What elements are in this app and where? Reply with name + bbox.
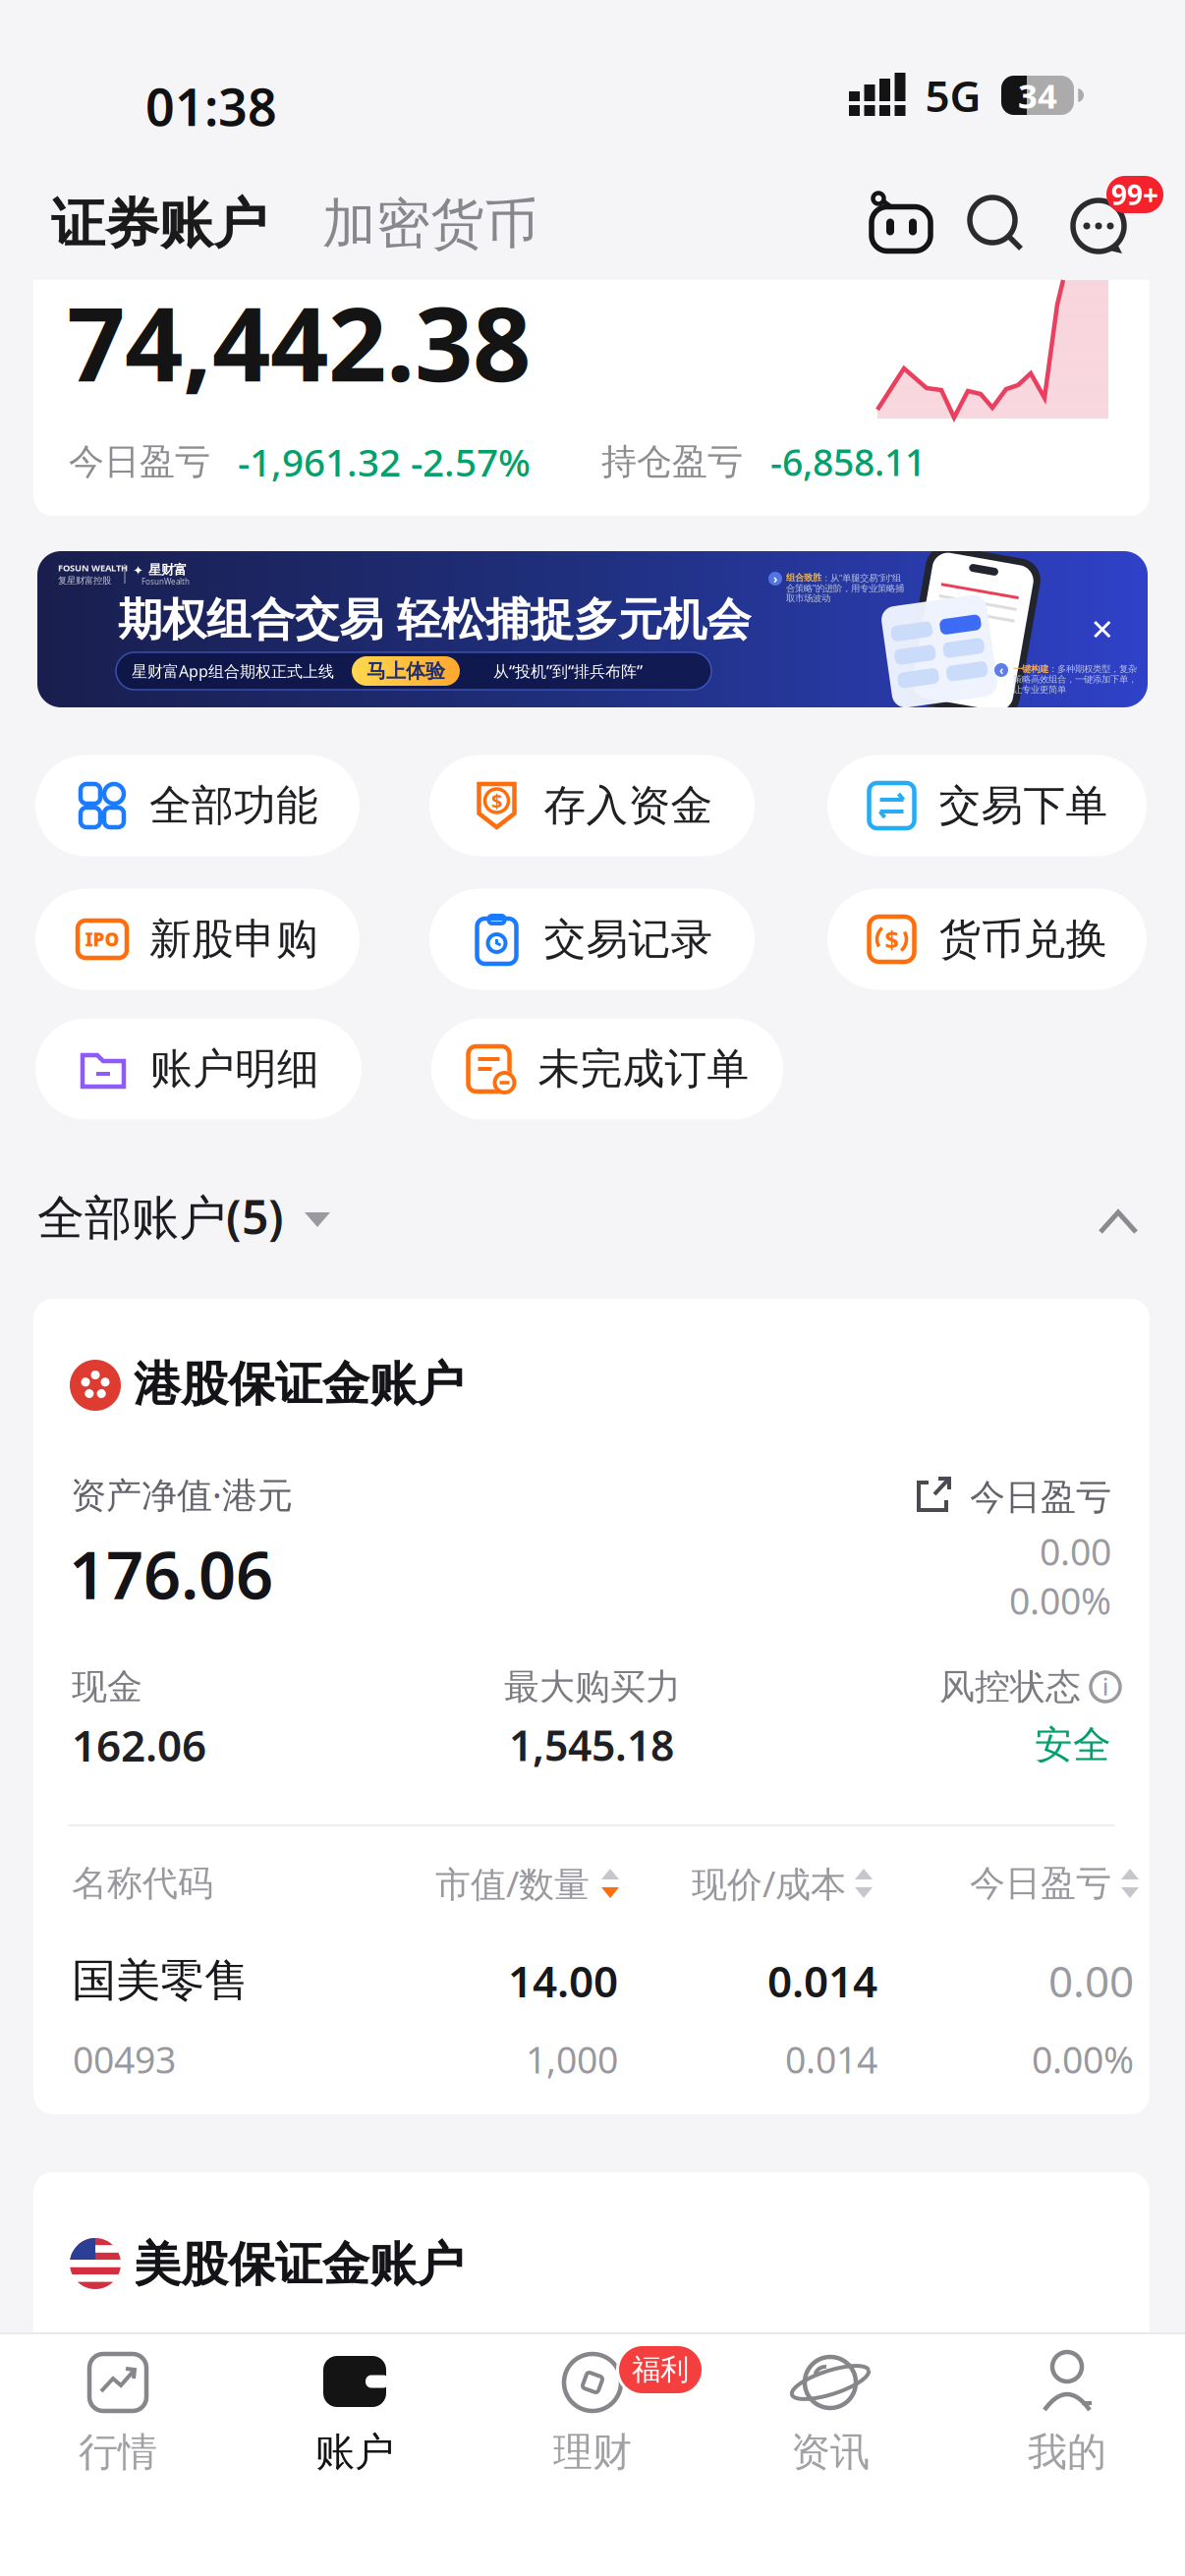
staticText: 1,000	[526, 2035, 618, 2084]
button[interactable]: AI assistant	[870, 194, 932, 252]
staticText: 加密货币	[322, 191, 538, 257]
staticText: 合策略”的进阶，用专业策略捕	[786, 582, 904, 594]
staticText: 复星财富控股	[58, 575, 111, 586]
staticText: 最大购买力	[504, 1665, 681, 1709]
staticText: 美股保证金账户	[134, 2236, 464, 2294]
staticText: ✕	[1090, 613, 1115, 646]
staticText: 176.06	[69, 1530, 273, 1617]
staticText: 资讯	[791, 2428, 870, 2476]
staticText: 组合致胜	[786, 572, 821, 583]
button[interactable]: 证券账户	[0, 0, 1185, 2576]
button[interactable]: IPO	[35, 889, 360, 990]
button[interactable]: 未完成订单	[431, 1018, 783, 1120]
button[interactable]: 交易下单	[827, 755, 1147, 856]
button[interactable]: Me	[1008, 2333, 1126, 2481]
button[interactable]: Messages	[1070, 195, 1129, 255]
staticText: 从“投机”到“排兵布阵”	[493, 661, 643, 681]
staticText: 行情	[79, 2428, 157, 2476]
staticText: 5G	[925, 67, 981, 124]
button[interactable]: FOSUN WEALTH	[37, 551, 1148, 707]
staticText: i	[1102, 1672, 1108, 1702]
staticText: 00493	[73, 2035, 176, 2084]
button[interactable]: Share	[915, 1475, 954, 1514]
button[interactable]: 加密货币	[0, 0, 1185, 2576]
staticText: 国美零售	[72, 1953, 249, 2008]
staticText: 存入资金	[544, 780, 713, 831]
staticText: 99+	[1111, 176, 1158, 213]
staticText: 现价/成本	[692, 1860, 846, 1907]
staticText: 0.014	[785, 2035, 877, 2084]
staticText: IPO	[85, 927, 119, 951]
button[interactable]: 交易记录	[429, 889, 755, 990]
staticText: 港股保证金账户	[134, 1355, 464, 1413]
staticText: ✦ 星财富	[133, 562, 187, 578]
staticText: FOSUN WEALTH	[58, 562, 128, 574]
button[interactable]: 马上体验	[352, 656, 460, 686]
staticText: 一键构建	[1013, 663, 1048, 675]
staticText: 货币兑换	[939, 913, 1108, 965]
staticText: 全部功能	[149, 780, 318, 831]
staticText: 资产净值·港元	[71, 1471, 293, 1518]
staticText: 0.014	[767, 1952, 877, 2009]
staticText: 证券账户	[51, 191, 267, 257]
staticText: 策略高效组合，一键添加下单，	[1013, 674, 1137, 685]
staticText: 让专业更简单	[1013, 684, 1066, 695]
staticText: ：从“单腿交易”到“组	[821, 572, 901, 584]
staticText: 14.00	[508, 1952, 618, 2009]
staticText: 名称代码	[72, 1862, 213, 1905]
staticText: 今日盈亏	[970, 1476, 1111, 1519]
staticText: 马上体验	[367, 659, 445, 683]
staticText: ：多种期权类型，复杂	[1048, 663, 1137, 675]
staticText: 新股申购	[149, 913, 318, 965]
button[interactable]: 账户明细	[35, 1018, 362, 1120]
staticText: 安全	[1035, 1722, 1111, 1768]
button[interactable]: Search	[967, 195, 1026, 253]
staticText: 0.00	[1040, 1527, 1111, 1576]
button[interactable]: Close banner	[1086, 613, 1119, 646]
staticText: 0.00%	[1032, 2035, 1134, 2084]
staticText: 1,545.18	[509, 1717, 674, 1773]
staticText: 162.06	[72, 1716, 206, 1774]
staticText: 我的	[1028, 2428, 1106, 2476]
staticText: 期权组合交易 轻松捕捉多元机会	[118, 593, 751, 647]
staticText: -1,961.32 -2.57%	[238, 437, 531, 487]
staticText: 理财	[553, 2428, 632, 2476]
staticText: 账户	[315, 2428, 394, 2476]
button[interactable]: Collapse accounts	[1097, 1206, 1140, 1240]
staticText: 全部账户(5)	[37, 1185, 284, 1248]
staticText: 风控状态	[939, 1665, 1081, 1709]
button[interactable]: Markets	[59, 2333, 177, 2481]
button[interactable]: 全部账户(5)	[37, 1191, 342, 1250]
staticText: 取市场波动	[786, 593, 830, 604]
staticText: 持仓盈亏	[601, 440, 743, 483]
staticText: 未完成订单	[538, 1043, 749, 1095]
button[interactable]: 全部功能	[35, 755, 360, 856]
staticText: 交易记录	[544, 913, 713, 965]
button[interactable]: $	[827, 889, 1147, 990]
staticText: ‹	[999, 662, 1003, 678]
staticText: 74,442.38	[67, 274, 531, 410]
button[interactable]: Wealth	[534, 2333, 651, 2481]
staticText: 市值/数量	[435, 1860, 590, 1907]
staticText: 星财富App组合期权正式上线	[132, 661, 334, 681]
staticText: 0.00	[1048, 1952, 1134, 2009]
staticText: ›	[773, 571, 777, 586]
staticText: 交易下单	[939, 780, 1108, 831]
staticText: 0.00%	[1009, 1576, 1111, 1625]
staticText: -6,858.11	[770, 437, 926, 486]
staticText: $	[491, 788, 502, 814]
staticText: 34	[1018, 73, 1057, 118]
staticText: 账户明细	[150, 1043, 319, 1095]
button[interactable]: Risk info	[1091, 1672, 1120, 1702]
staticText: $	[885, 923, 899, 956]
staticText: 今日盈亏	[970, 1862, 1111, 1905]
staticText: 今日盈亏	[69, 440, 210, 483]
staticText: 01:38	[145, 72, 277, 140]
staticText: 现金	[72, 1665, 142, 1709]
staticText: FosunWealth	[141, 576, 190, 587]
staticText: 福利	[632, 2352, 689, 2387]
button[interactable]: $	[429, 755, 755, 856]
button[interactable]: News	[771, 2333, 889, 2481]
button[interactable]: Account	[296, 2333, 414, 2481]
